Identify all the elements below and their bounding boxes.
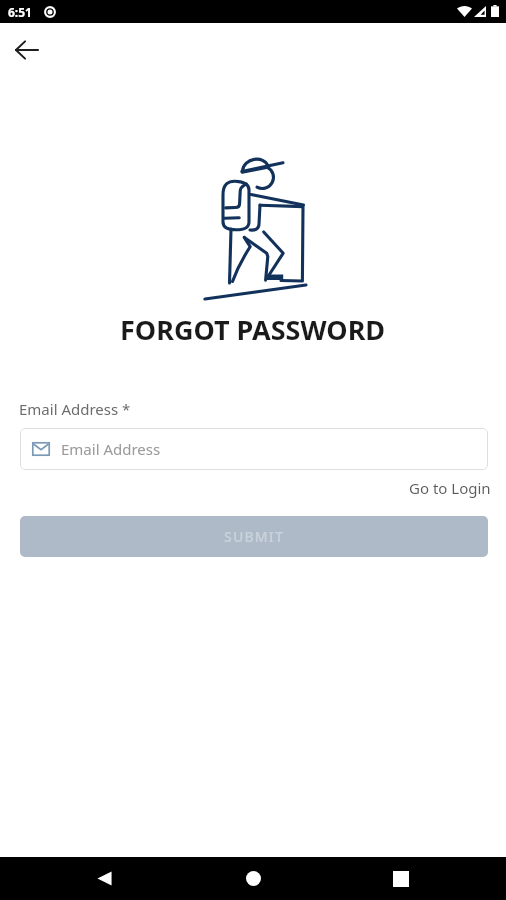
button[interactable]: SUBMIT bbox=[20, 516, 488, 557]
button[interactable]: Go to Login bbox=[407, 476, 493, 500]
staticText: 6:51 bbox=[8, 4, 32, 20]
staticText: Go to Login bbox=[409, 478, 491, 498]
staticText: Email Address * bbox=[19, 399, 131, 419]
staticText: FORGOT PASSWORD bbox=[120, 311, 386, 348]
button[interactable]: Email Address bbox=[20, 428, 488, 470]
button[interactable]: Home bbox=[223, 857, 283, 900]
button[interactable]: Recent apps bbox=[371, 857, 431, 900]
button[interactable]: Back bbox=[5, 28, 49, 72]
staticText: Email Address bbox=[61, 439, 161, 459]
button[interactable]: Back bbox=[74, 857, 134, 900]
staticText: SUBMIT bbox=[224, 527, 285, 546]
